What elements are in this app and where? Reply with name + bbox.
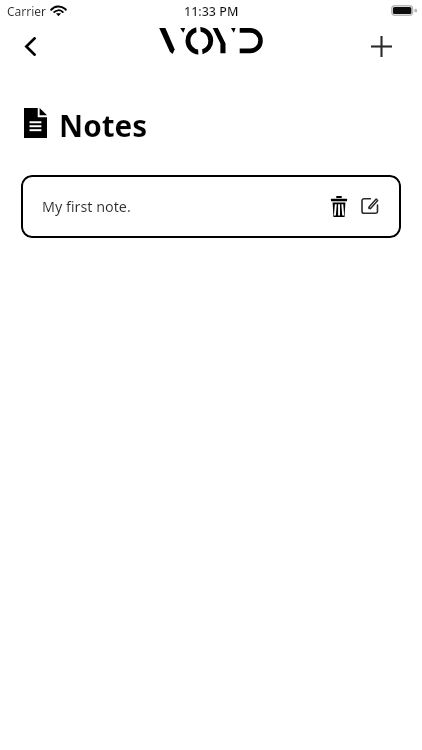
button[interactable]: Delete note — [323, 190, 355, 222]
staticText: Notes — [59, 105, 148, 145]
staticText: 11:33 PM — [184, 3, 239, 20]
button[interactable]: Back — [8, 24, 52, 68]
staticText: My first note. — [42, 197, 131, 216]
button[interactable]: Add note — [359, 24, 403, 68]
staticText: Carrier — [7, 3, 47, 19]
button[interactable]: My first note. — [21, 175, 401, 238]
button[interactable]: Edit note — [354, 190, 386, 222]
